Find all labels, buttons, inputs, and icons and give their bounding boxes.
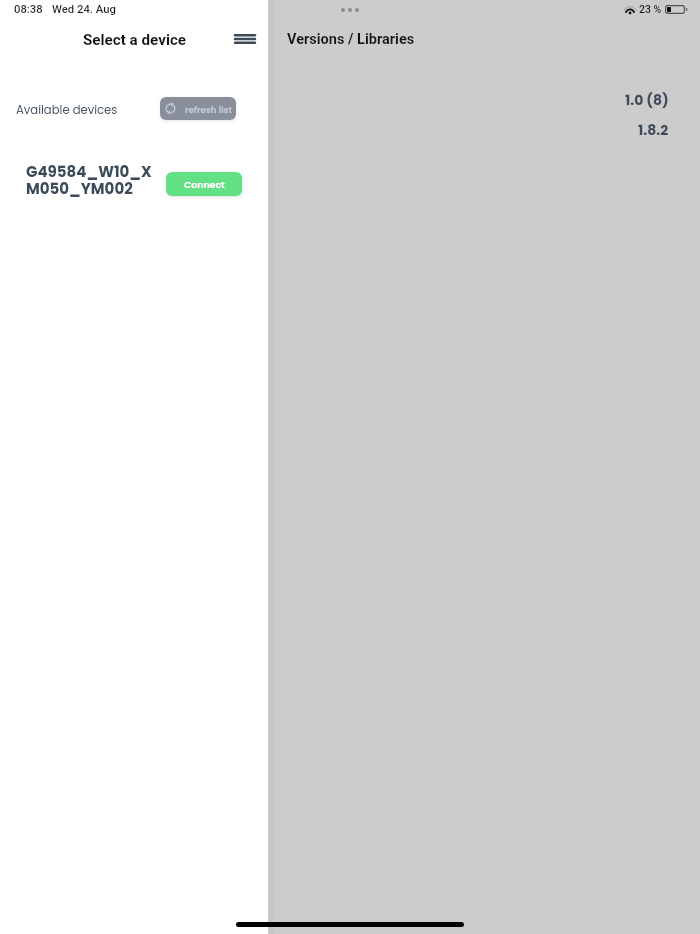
button[interactable]: G49584_W10_XM050_YM002 <box>0 152 269 206</box>
staticText: 23 % <box>639 3 662 15</box>
staticText: 1.8.2 <box>638 120 669 140</box>
staticText: Available devices <box>16 102 118 118</box>
staticText: 1.0 (8) <box>625 90 669 110</box>
staticText: Connect <box>184 178 225 191</box>
staticText: G49584_W10_XM050_YM002 <box>26 161 154 199</box>
button[interactable]: refresh list <box>160 97 236 120</box>
staticText: Versions / Libraries <box>287 31 415 48</box>
staticText: 08:38 <box>14 3 43 16</box>
staticText: Wed 24. Aug <box>52 3 116 16</box>
button[interactable]: Connect <box>166 172 242 196</box>
staticText: Select a device <box>83 31 187 49</box>
button[interactable]: Open navigation menu <box>231 25 259 53</box>
staticText: refresh list <box>185 104 232 116</box>
